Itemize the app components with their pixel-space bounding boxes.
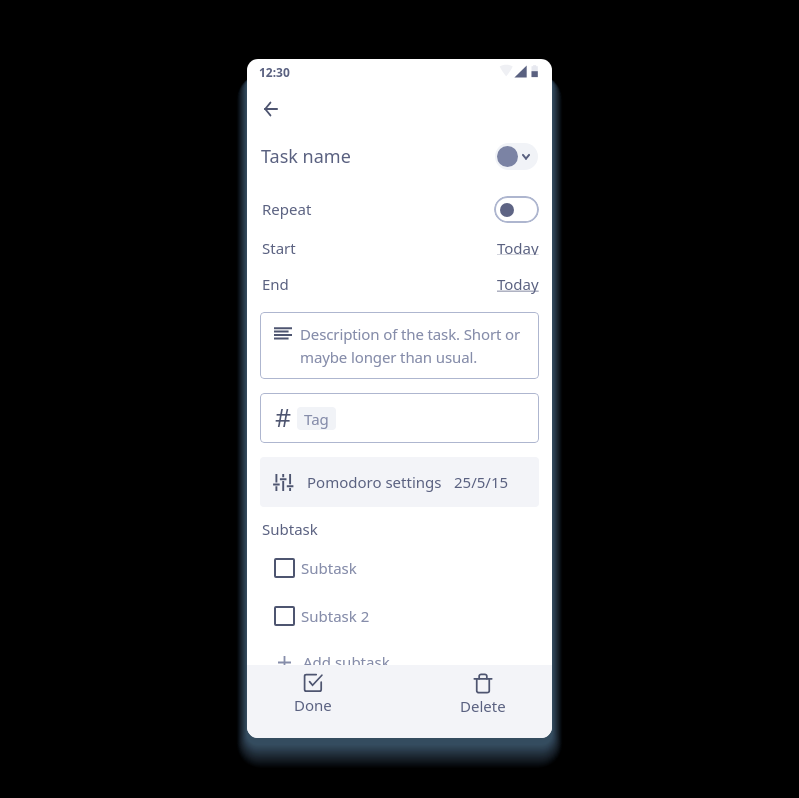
staticText: #: [275, 400, 292, 434]
staticText: Description of the task. Short or maybe …: [300, 324, 529, 367]
staticText: 25/5/15: [454, 472, 509, 492]
button[interactable]: Description of the task. Short or maybe …: [260, 312, 539, 379]
button[interactable]: Subtask 2: [274, 606, 539, 626]
staticText: Subtask 2: [301, 606, 370, 626]
button[interactable]: Repeat toggle: [494, 196, 539, 223]
staticText: Tag: [304, 409, 329, 429]
staticText: Pomodoro settings: [307, 472, 442, 492]
staticText: Today: [497, 274, 539, 294]
button[interactable]: Choose colour: [495, 143, 538, 170]
button[interactable]: Start: [262, 238, 539, 255]
staticText: Subtask: [262, 519, 318, 539]
staticText: Repeat: [262, 199, 312, 219]
staticText: Start: [262, 238, 296, 255]
staticText: Add subtask: [303, 652, 390, 672]
button[interactable]: Done: [266, 665, 360, 715]
staticText: 12:30: [259, 64, 290, 80]
staticText: Done: [294, 695, 332, 715]
button[interactable]: Pomodoro settings: [260, 457, 539, 507]
button[interactable]: Add subtask: [278, 652, 539, 672]
staticText: Today: [497, 238, 539, 255]
staticText: Subtask: [301, 558, 357, 578]
staticText: Task name: [261, 144, 351, 169]
button[interactable]: End: [262, 255, 539, 312]
button[interactable]: #: [260, 393, 539, 443]
button[interactable]: Back: [251, 84, 291, 133]
button[interactable]: Delete: [436, 665, 530, 716]
staticText: Delete: [460, 696, 506, 716]
button[interactable]: Subtask: [274, 558, 539, 578]
staticText: End: [262, 274, 289, 294]
